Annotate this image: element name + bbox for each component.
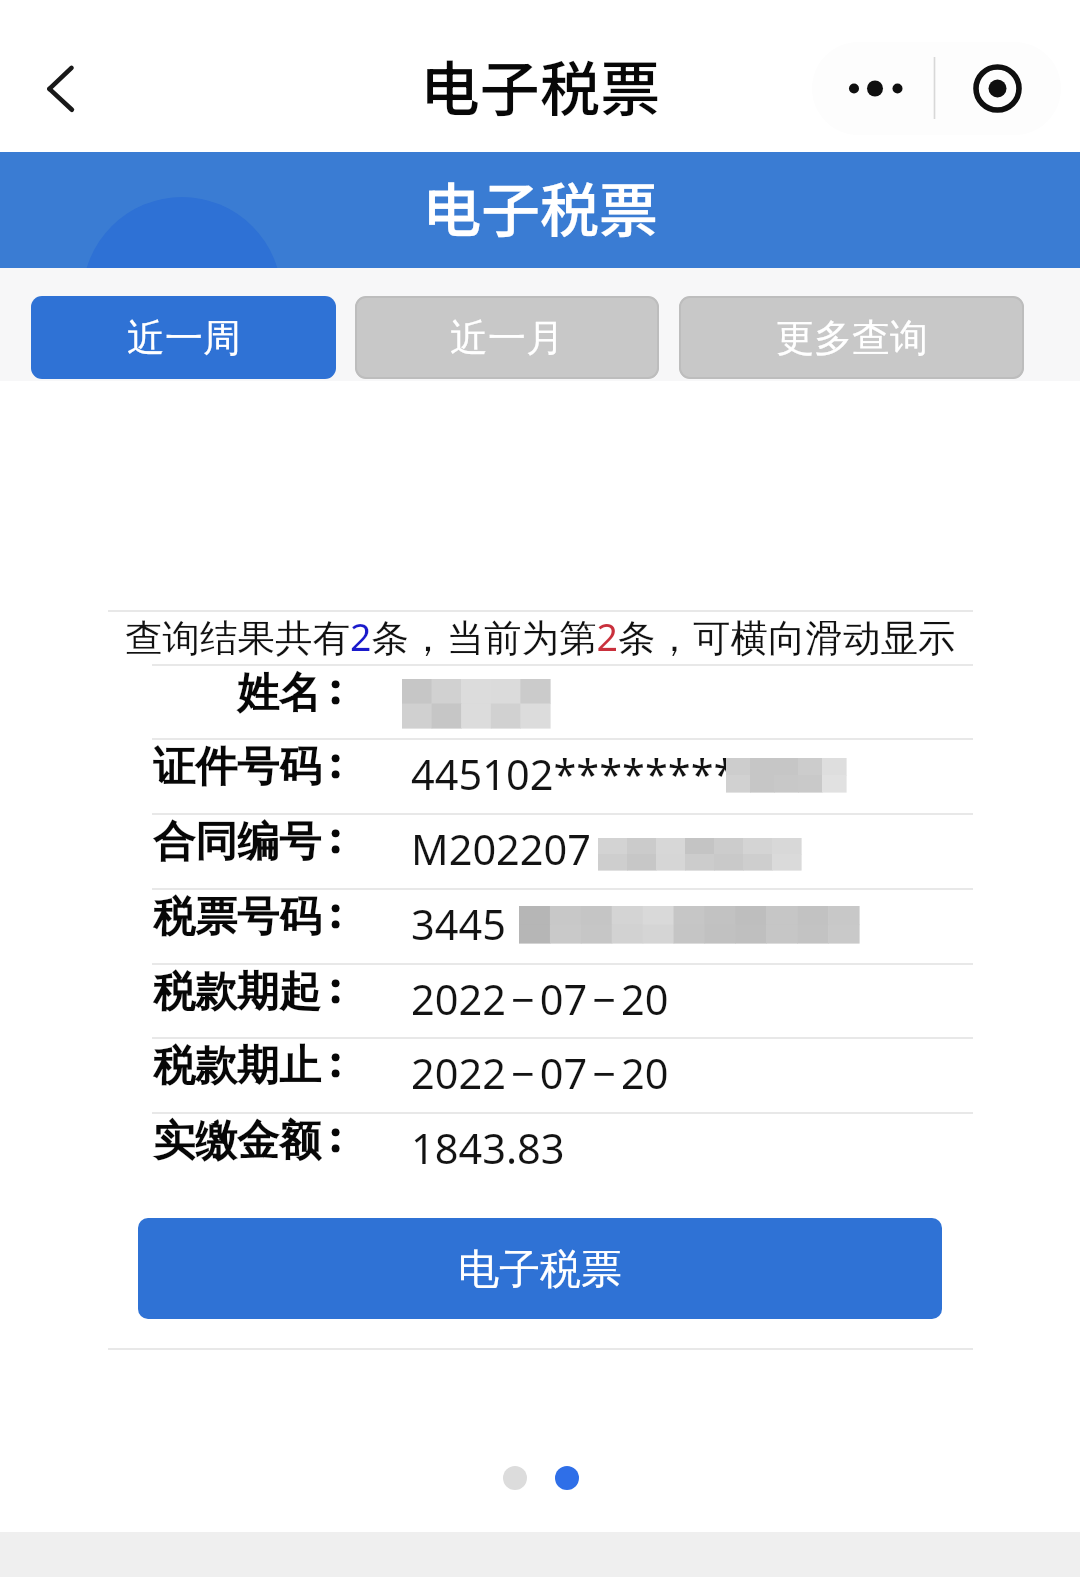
staticText: 姓名	[237, 667, 321, 720]
button[interactable]: 近一周	[31, 296, 336, 379]
staticText: 合同编号	[153, 816, 321, 869]
staticText: 实缴金额	[153, 1115, 321, 1168]
staticText: 445102********	[411, 746, 737, 803]
staticText: 查询结果共有2条，当前为第2条，可横向滑动显示	[125, 611, 956, 662]
staticText: M202207	[411, 821, 592, 878]
staticText: 2022−07−20	[411, 1045, 669, 1102]
button[interactable]: 电子税票	[138, 1218, 942, 1319]
staticText: 1843.83	[411, 1120, 565, 1177]
staticText: 更多查询	[776, 314, 928, 362]
staticText: 近一周	[127, 314, 241, 362]
button[interactable]: Back	[24, 44, 88, 108]
staticText: 电子税票	[422, 164, 659, 249]
staticText: 近一月	[450, 314, 564, 362]
staticText: 电子税票	[420, 41, 660, 128]
button[interactable]: 更多查询	[679, 296, 1024, 379]
staticText: 证件号码	[153, 741, 321, 794]
staticText: 3445	[411, 896, 506, 953]
staticText: 电子税票	[458, 1244, 622, 1296]
staticText: 税票号码	[153, 891, 321, 944]
staticText: 2022−07−20	[411, 971, 669, 1028]
button[interactable]: 近一月	[355, 296, 659, 379]
button[interactable]: More options and close	[812, 42, 1061, 135]
staticText: 税款期止	[153, 1040, 321, 1093]
staticText: 税款期起	[153, 966, 321, 1019]
